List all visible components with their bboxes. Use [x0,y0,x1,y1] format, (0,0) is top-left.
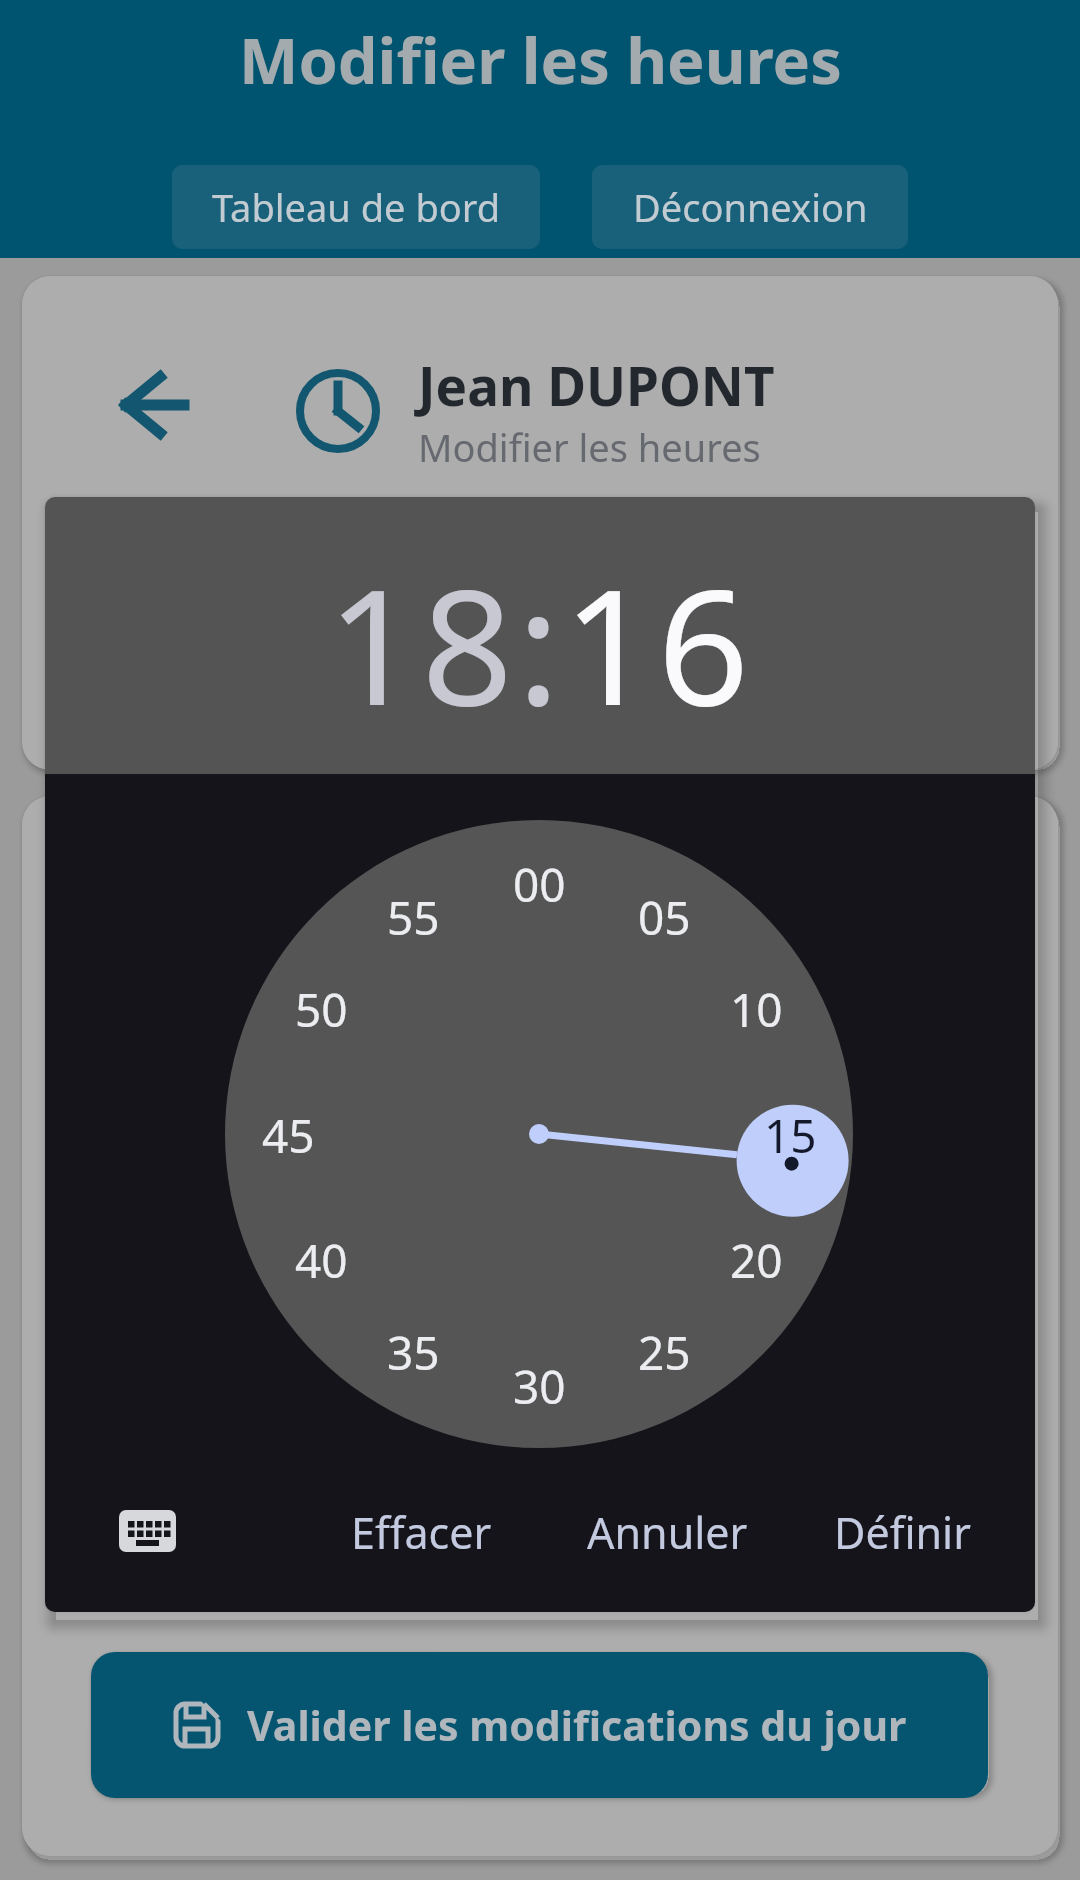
staticText: : [517,534,563,752]
button[interactable]: Valider les modifications du jour [91,1652,988,1798]
staticText: Jean DUPONT [418,349,775,421]
button[interactable]: Définir [797,1497,1007,1567]
button[interactable]: Tableau de bord [172,165,540,249]
staticText: Modifier les heures [418,421,761,473]
staticText: 35 [387,1321,440,1381]
staticText: Définir [834,1503,971,1562]
staticText: Déconnexion [633,181,868,233]
button[interactable]: Effacer [311,1497,531,1567]
staticText: 25 [638,1321,691,1381]
button[interactable]: Déconnexion [592,165,908,249]
staticText: Tableau de bord [212,181,501,233]
staticText: 45 [262,1104,315,1164]
staticText: Effacer [351,1503,492,1562]
staticText: 00 [513,853,566,913]
staticText: 20 [730,1229,783,1289]
staticText: 18 [327,534,517,752]
staticText: 50 [295,978,348,1038]
staticText: Modifier les heures [239,17,842,103]
staticText: 05 [638,886,691,946]
staticText: Annuler [587,1503,748,1562]
staticText: 55 [387,886,440,946]
staticText: 30 [513,1355,566,1415]
button[interactable] [100,1495,196,1567]
staticText: 40 [295,1229,348,1289]
staticText: Valider les modifications du jour [247,1697,907,1753]
staticText: 15 [764,1104,817,1164]
button[interactable]: Annuler [552,1497,782,1567]
button[interactable] [110,365,200,445]
staticText: 16 [563,534,753,752]
staticText: 10 [730,978,783,1038]
